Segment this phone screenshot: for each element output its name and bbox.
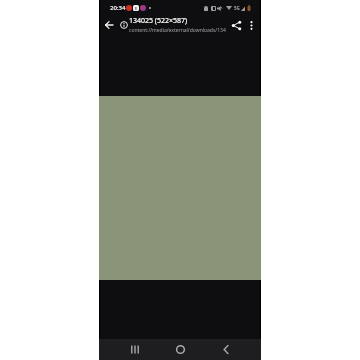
button[interactable]: Back	[212, 339, 240, 360]
staticText: 20:34	[110, 4, 126, 12]
button[interactable]: Back	[102, 18, 116, 32]
staticText: 134025 (522×587)	[129, 16, 188, 26]
button[interactable]: Recents	[121, 339, 149, 360]
button[interactable]: Share	[229, 18, 243, 32]
button[interactable]: Home	[166, 339, 194, 360]
button[interactable]: More options	[244, 18, 258, 32]
staticText: E	[135, 6, 138, 11]
staticText: content://media/external/downloads/134	[129, 27, 226, 34]
button[interactable]: File info	[118, 19, 130, 31]
staticText: 5G	[234, 5, 240, 11]
